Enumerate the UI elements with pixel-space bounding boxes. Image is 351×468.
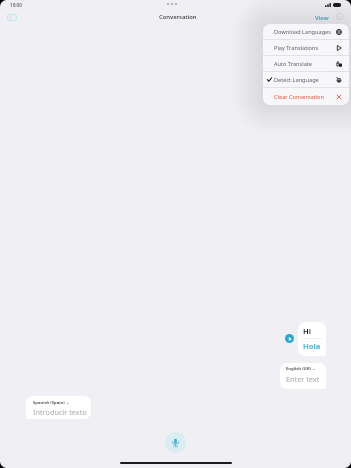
staticText: Hola [303,341,321,351]
button[interactable]: Download Languages [263,24,349,39]
button[interactable]: Spanish (Spain) ⌄ [26,396,91,419]
staticText: English (UK) ⌄ [286,366,316,372]
button[interactable]: Auto Translate [263,56,349,71]
button[interactable]: View [312,12,332,24]
button[interactable]: Play Translations [263,40,349,55]
button[interactable]: Toggle sidebar [3,8,21,26]
staticText: Download Languages [274,28,331,36]
staticText: Auto Translate [274,60,312,68]
staticText: 10:00 [10,2,22,8]
button[interactable]: Hi [298,322,326,356]
button[interactable]: Clear Conversation [263,88,349,105]
staticText: Introducir texto [33,407,87,417]
staticText: View [315,14,329,22]
staticText: Spanish (Spain) ⌄ [33,400,70,406]
staticText: Clear Conversation [274,93,324,101]
button[interactable]: Play translation [285,334,294,343]
button[interactable]: English (UK) ⌄ [280,363,326,389]
staticText: Detect Language [274,76,319,84]
button[interactable]: More options [333,10,346,23]
staticText: Play Translations [274,44,319,52]
button[interactable]: Microphone [165,432,186,453]
staticText: Hi [303,326,311,336]
staticText: Enter text [286,374,320,384]
button[interactable]: Detect Language [263,72,349,87]
staticText: Conversation [159,13,197,21]
